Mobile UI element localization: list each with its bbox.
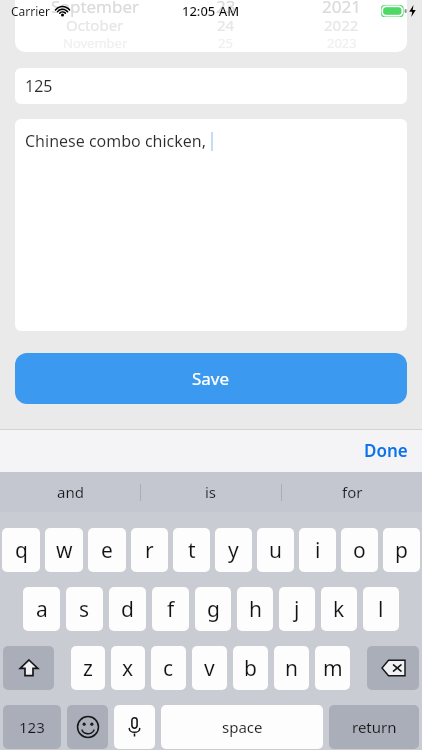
staticText: j (294, 595, 300, 624)
staticText: October (66, 15, 124, 35)
button[interactable]: Chinese combo chicken, (15, 119, 407, 331)
staticText: 2022 (324, 15, 359, 35)
staticText: 12:05 AM (182, 2, 240, 20)
staticText: d (121, 595, 134, 624)
staticText: is (205, 482, 217, 502)
button[interactable]: and (0, 472, 140, 512)
staticText: 2023 (327, 34, 357, 52)
button[interactable]: m (315, 646, 350, 690)
staticText: i (315, 536, 321, 565)
button[interactable]: v (192, 646, 227, 690)
button[interactable]: t (173, 528, 210, 572)
staticText: November (63, 34, 128, 52)
staticText: Chinese combo chicken, (25, 130, 207, 152)
button[interactable]: Shift (3, 646, 54, 690)
staticText: r (145, 536, 154, 565)
button[interactable]: e (88, 528, 126, 572)
staticText: Save (192, 367, 230, 390)
staticText: c (163, 654, 174, 683)
staticText: v (204, 654, 215, 683)
button[interactable]: i (299, 528, 336, 572)
staticText: September (51, 0, 140, 18)
staticText: f (167, 595, 175, 624)
button[interactable]: p (383, 528, 420, 572)
staticText: g (207, 595, 220, 624)
button[interactable]: q (2, 528, 40, 572)
staticText: Carrier (11, 3, 51, 19)
button[interactable]: x (111, 646, 145, 690)
button[interactable]: b (233, 646, 268, 690)
button[interactable]: Save (15, 353, 407, 404)
staticText: t (188, 536, 196, 565)
button[interactable]: s (66, 587, 103, 631)
staticText: x (122, 654, 134, 683)
staticText: space (222, 717, 263, 737)
button[interactable]: Done (364, 439, 408, 462)
button[interactable]: u (257, 528, 294, 572)
button[interactable]: 125 (15, 68, 407, 104)
staticText: n (285, 654, 298, 683)
button[interactable]: 123 (3, 705, 61, 749)
staticText: Done (364, 439, 408, 462)
staticText: h (249, 595, 262, 624)
staticText: q (15, 536, 28, 565)
button[interactable]: l (363, 587, 399, 631)
button[interactable]: k (321, 587, 357, 631)
staticText: o (353, 536, 366, 565)
staticText: return (352, 717, 397, 737)
button[interactable]: c (151, 646, 186, 690)
button[interactable]: Delete (367, 646, 419, 690)
staticText: e (101, 536, 113, 565)
button[interactable]: j (279, 587, 315, 631)
staticText: p (395, 536, 408, 565)
staticText: k (333, 595, 345, 624)
button[interactable]: d (109, 587, 146, 631)
staticText: 24 (217, 15, 235, 35)
staticText: 25 (218, 34, 233, 52)
button[interactable]: y (215, 528, 252, 572)
button[interactable]: Dictation (114, 705, 155, 749)
button[interactable]: a (23, 587, 60, 631)
button[interactable]: return (329, 705, 419, 749)
staticText: 23 (216, 0, 236, 18)
staticText: a (36, 595, 48, 624)
staticText: m (323, 654, 343, 683)
staticText: 123 (19, 717, 45, 737)
button[interactable]: Emoji (67, 705, 108, 749)
staticText: s (79, 595, 90, 624)
button[interactable]: f (152, 587, 189, 631)
button[interactable]: z (71, 646, 105, 690)
button[interactable]: w (45, 528, 83, 572)
button[interactable]: r (131, 528, 168, 572)
button[interactable]: o (341, 528, 378, 572)
staticText: and (57, 482, 84, 502)
staticText: b (244, 654, 257, 683)
staticText: 125 (25, 75, 53, 97)
staticText: y (228, 536, 239, 565)
staticText: for (342, 482, 363, 502)
button[interactable]: n (274, 646, 309, 690)
button[interactable]: g (195, 587, 231, 631)
button[interactable]: h (237, 587, 273, 631)
staticText: l (378, 595, 384, 624)
staticText: 2021 (322, 0, 361, 18)
button[interactable]: for (282, 472, 422, 512)
button[interactable]: is (141, 472, 281, 512)
staticText: u (269, 536, 282, 565)
button[interactable]: space (161, 705, 323, 749)
staticText: z (83, 654, 93, 683)
staticText: w (56, 536, 73, 565)
